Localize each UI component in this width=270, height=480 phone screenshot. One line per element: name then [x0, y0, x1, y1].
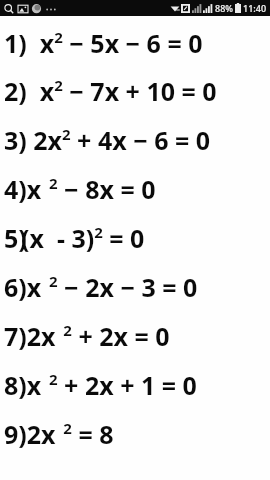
other: Quadratic equations worksheet: [0, 0, 270, 480]
button[interactable]: 7)2x 2 + 2x = 0: [0, 311, 270, 360]
button[interactable]: 2) x2 − 7x + 10 = 0: [0, 66, 270, 115]
staticText: 8)x 2 + 2x + 1 = 0: [4, 368, 197, 402]
button[interactable]: 8)x 2 + 2x + 1 = 0: [0, 360, 270, 409]
button[interactable]: 6)x 2 − 2x − 3 = 0: [0, 262, 270, 311]
staticText: 4)x 2 − 8x = 0: [4, 172, 156, 206]
staticText: 6)x 2 − 2x − 3 = 0: [4, 270, 198, 304]
staticText: 2) x2 − 7x + 10 = 0: [4, 74, 217, 108]
button[interactable]: 1) x2 − 5x − 6 = 0: [0, 16, 270, 66]
button[interactable]: 3) 2x2 + 4x − 6 = 0: [0, 115, 270, 164]
staticText: 11:40: [243, 2, 267, 14]
staticText: 7)2x 2 + 2x = 0: [4, 319, 170, 353]
staticText: 3) 2x2 + 4x − 6 = 0: [4, 123, 211, 157]
staticText: 88%: [215, 2, 233, 14]
staticText: (x - 3)2 = 0: [21, 221, 145, 255]
staticText: 9)2x 2 = 8: [4, 417, 114, 451]
button[interactable]: 9)2x 2 = 8: [0, 409, 270, 458]
staticText: 1) x2 − 5x − 6 = 0: [4, 26, 203, 60]
button[interactable]: 5): [0, 213, 270, 262]
staticText: 5): [4, 221, 27, 255]
button[interactable]: 4)x 2 − 8x = 0: [0, 164, 270, 213]
